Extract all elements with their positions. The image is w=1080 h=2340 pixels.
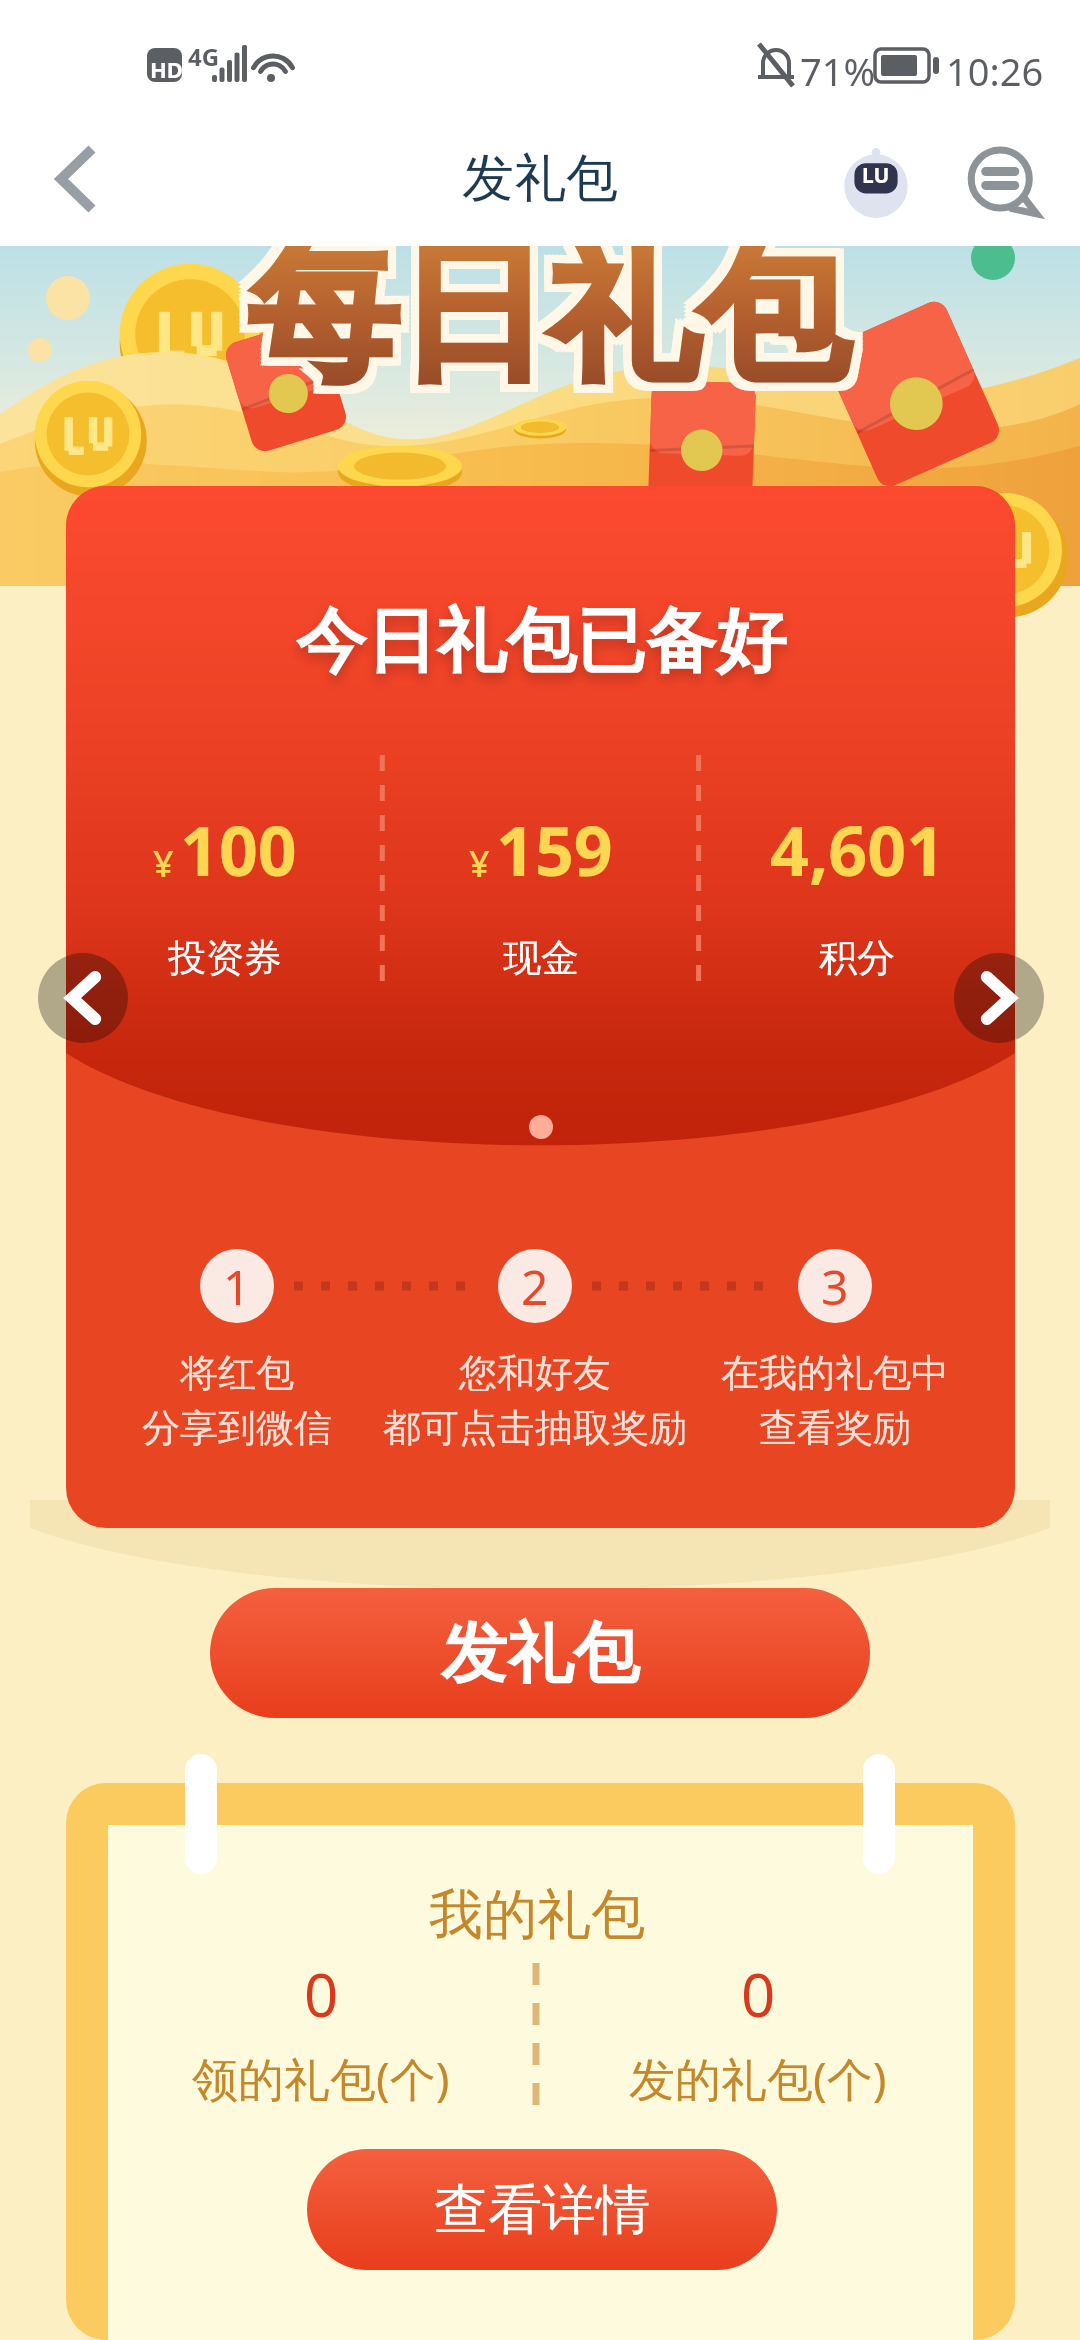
staticText: 发礼包: [462, 146, 618, 212]
staticText: 每日礼包: [244, 212, 844, 401]
staticText: 0: [304, 1953, 339, 2035]
staticText: 每日礼包: [244, 228, 844, 417]
staticText: 每日礼包: [240, 220, 840, 409]
staticText: 您和好友 都可点击抽取奖励: [383, 1349, 687, 1452]
staticText: 在我的礼包中 查看奖励: [721, 1349, 949, 1452]
staticText: 每日礼包: [244, 220, 844, 409]
button[interactable]: Messages: [958, 135, 1046, 223]
button[interactable]: Next: [954, 953, 1044, 1043]
staticText: 现金: [503, 934, 579, 982]
staticText: 4,601: [770, 803, 945, 896]
staticText: 每日礼包: [248, 216, 848, 405]
staticText: 发的礼包(个): [629, 2047, 887, 2110]
button[interactable]: Previous: [38, 953, 128, 1043]
staticText: 每日礼包: [256, 220, 856, 409]
staticText: 每日礼包: [252, 228, 852, 417]
button[interactable]: Assistant: [840, 143, 912, 215]
button[interactable]: Back: [24, 131, 120, 227]
staticText: 每日礼包: [240, 216, 840, 405]
staticText: 0: [741, 1953, 776, 2035]
staticText: 100: [180, 803, 297, 896]
staticText: 每日礼包: [248, 224, 848, 413]
staticText: 我的礼包: [429, 1881, 645, 1949]
staticText: 每日礼包: [248, 220, 848, 409]
staticText: 查看详情: [434, 2176, 650, 2244]
staticText: 71%: [800, 45, 876, 97]
staticText: 159: [496, 803, 613, 896]
staticText: 将红包 分享到微信: [142, 1349, 332, 1452]
staticText: 每日礼包: [256, 224, 856, 413]
staticText: 每日礼包: [248, 212, 848, 401]
staticText: 每日礼包: [240, 228, 840, 417]
staticText: 每日礼包: [252, 212, 852, 401]
staticText: 每日礼包: [244, 216, 844, 405]
staticText: 今日礼包已备好: [296, 598, 786, 686]
staticText: LU: [862, 161, 890, 190]
staticText: ¥: [153, 839, 174, 888]
staticText: 发礼包: [441, 1612, 639, 1695]
button[interactable]: 查看详情: [307, 2149, 777, 2270]
staticText: 每日礼包: [244, 224, 844, 413]
staticText: 每日礼包: [252, 220, 852, 409]
staticText: 领的礼包(个): [192, 2047, 450, 2110]
staticText: 2: [521, 1254, 549, 1319]
staticText: 每日礼包: [252, 224, 852, 413]
staticText: 3: [821, 1254, 849, 1319]
staticText: 10:26: [946, 45, 1044, 97]
staticText: 每日礼包: [256, 216, 856, 405]
staticText: 积分: [819, 934, 895, 982]
staticText: 投资券: [168, 934, 282, 982]
staticText: ¥: [469, 839, 490, 888]
staticText: 1: [223, 1254, 251, 1319]
staticText: 每日礼包: [248, 228, 848, 417]
staticText: 4G: [188, 40, 220, 73]
staticText: 每日礼包: [256, 228, 856, 417]
staticText: 每日礼包: [252, 216, 852, 405]
staticText: 每日礼包: [240, 224, 840, 413]
button[interactable]: 今日礼包已备好: [66, 486, 1015, 1528]
staticText: 每日礼包: [240, 212, 840, 401]
staticText: HD: [150, 54, 183, 84]
staticText: 每日礼包: [256, 212, 856, 401]
button[interactable]: 发礼包: [210, 1588, 870, 1718]
